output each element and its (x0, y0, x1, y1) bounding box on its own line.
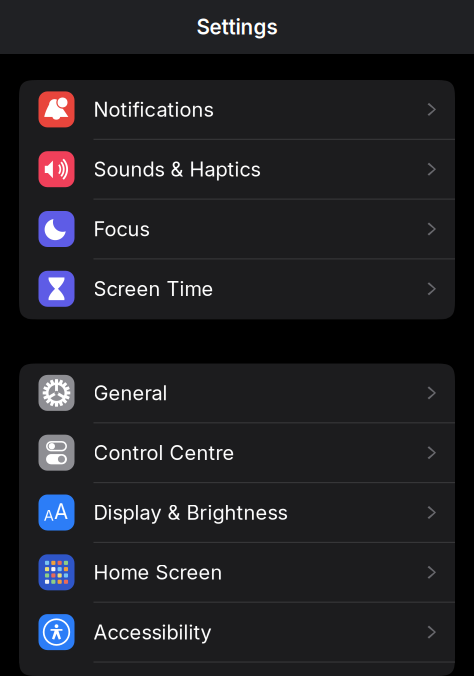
button[interactable]: Notifications (19, 80, 455, 140)
staticText: Accessibility (93, 620, 211, 644)
staticText: Sounds & Haptics (93, 157, 260, 181)
button[interactable]: Sounds & Haptics (19, 140, 455, 200)
staticText: Focus (93, 217, 149, 241)
staticText: A (54, 499, 68, 524)
button[interactable]: Settings (0, 0, 474, 54)
staticText: Home Screen (93, 560, 222, 584)
staticText: Settings (196, 14, 277, 39)
button[interactable]: Accessibility (19, 603, 455, 662)
staticText: A (44, 506, 54, 524)
button[interactable]: Screen Time (19, 259, 455, 319)
button[interactable]: A (19, 483, 455, 543)
staticText: Screen Time (93, 277, 213, 301)
button[interactable]: Home Screen (19, 543, 455, 603)
staticText: Notifications (93, 97, 213, 121)
button[interactable]: Focus (19, 200, 455, 259)
staticText: Control Centre (93, 441, 234, 465)
button[interactable]: General (19, 363, 455, 423)
staticText: General (93, 381, 167, 405)
staticText: Display & Brightness (93, 500, 287, 525)
button[interactable]: Control Centre (19, 423, 455, 483)
